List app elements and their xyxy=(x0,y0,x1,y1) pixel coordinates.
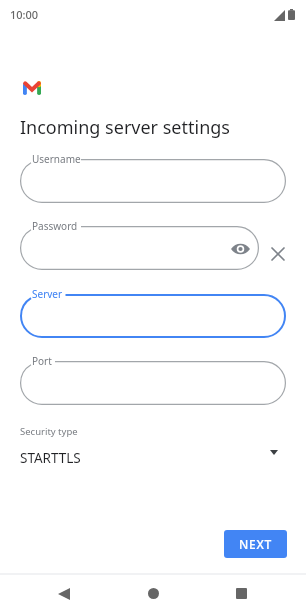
button[interactable]: Clear xyxy=(263,239,292,268)
button[interactable]: Security type xyxy=(0,420,306,476)
staticText: Username xyxy=(32,152,81,166)
staticText: STARTTLS xyxy=(20,449,81,467)
button[interactable]: Recents xyxy=(217,573,265,612)
staticText: Incoming server settings xyxy=(20,115,230,140)
button[interactable]: NEXT xyxy=(224,530,287,558)
staticText: Password xyxy=(32,219,78,233)
button[interactable]: Port xyxy=(20,361,286,405)
staticText: Security type xyxy=(20,425,78,438)
staticText: NEXT xyxy=(239,536,272,552)
button[interactable]: Show password xyxy=(226,235,254,263)
button[interactable]: Username xyxy=(20,159,286,203)
staticText: 10:00 xyxy=(10,7,39,22)
button[interactable]: Home xyxy=(129,573,177,612)
button[interactable]: Back xyxy=(40,573,88,612)
staticText: Port xyxy=(32,354,52,368)
button[interactable]: Server xyxy=(20,294,286,338)
staticText: Server xyxy=(32,287,63,301)
button[interactable]: Password xyxy=(20,226,259,270)
